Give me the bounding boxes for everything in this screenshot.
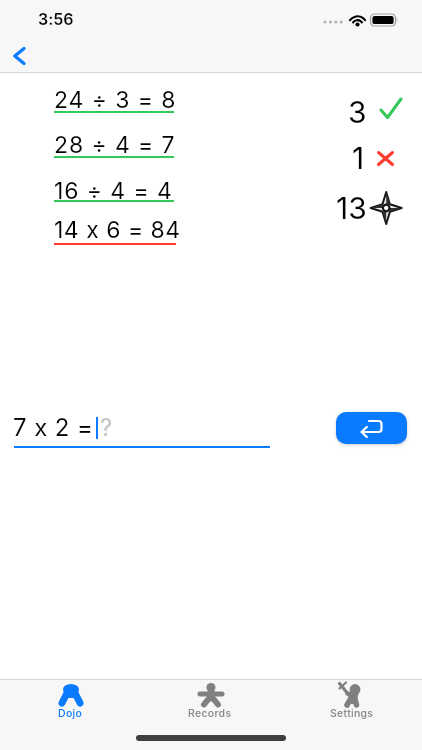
button[interactable]: Dojo xyxy=(26,680,116,725)
button[interactable]: Records xyxy=(166,680,256,725)
staticText: 14 x 6 = 84 xyxy=(54,216,181,244)
staticText: 13 xyxy=(336,190,367,226)
staticText: 7 x 2 = xyxy=(13,413,101,442)
staticText: 3:56 xyxy=(38,9,74,28)
staticText: Settings xyxy=(330,707,374,720)
button[interactable]: Settings xyxy=(306,680,396,725)
button[interactable] xyxy=(6,40,40,72)
staticText: 16 ÷ 4 = 4 xyxy=(54,177,173,205)
staticText: Records xyxy=(188,707,232,720)
button[interactable] xyxy=(336,412,407,444)
staticText: 1 xyxy=(352,140,365,176)
staticText: ? xyxy=(100,413,113,442)
staticText: 24 ÷ 3 = 8 xyxy=(54,86,177,114)
staticText: 3 xyxy=(348,94,367,130)
staticText: 28 ÷ 4 = 7 xyxy=(54,131,176,159)
staticText: Dojo xyxy=(58,707,83,720)
